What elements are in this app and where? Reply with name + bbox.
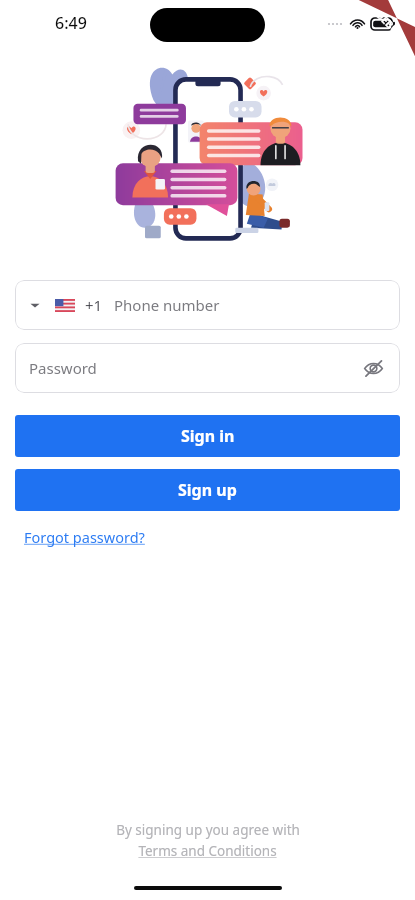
staticText: Sign up	[178, 479, 237, 501]
button[interactable]: Sign up	[15, 469, 400, 511]
staticText: 6:49	[55, 12, 87, 34]
staticText: DEBUG	[373, 8, 408, 42]
staticText: Phone number	[114, 295, 220, 315]
button[interactable]: Password	[15, 343, 400, 393]
button[interactable]: Terms and Conditions	[138, 842, 277, 860]
button[interactable]: Sign in	[15, 415, 400, 457]
staticText: Forgot password?	[24, 527, 145, 547]
staticText: Sign in	[181, 425, 235, 447]
button[interactable]: Forgot password?	[24, 527, 145, 547]
button[interactable]: Show password	[360, 355, 386, 381]
button[interactable]: +1	[15, 280, 400, 330]
staticText: Password	[29, 358, 360, 378]
staticText: Terms and Conditions	[138, 842, 277, 860]
staticText: +1	[85, 295, 103, 315]
staticText: By signing up you agree with	[116, 821, 300, 839]
